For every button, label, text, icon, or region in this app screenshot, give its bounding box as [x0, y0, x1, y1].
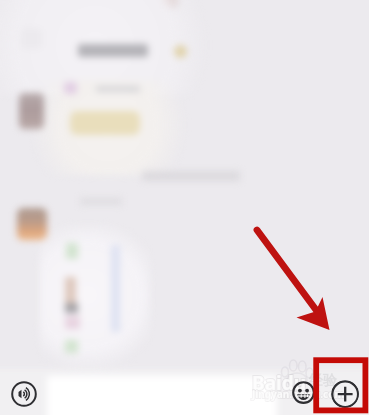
staticText: Jingyan.baidu.com [252, 387, 345, 401]
button[interactable]: Voice message [11, 381, 37, 407]
button[interactable]: Emoji [292, 381, 316, 405]
staticText: Baidu [252, 370, 307, 396]
button[interactable]: More functions [331, 380, 359, 408]
staticText: Jingyan.baidu.com [252, 387, 345, 401]
staticText: 经验 [309, 372, 337, 390]
staticText: Baidu [252, 370, 307, 396]
